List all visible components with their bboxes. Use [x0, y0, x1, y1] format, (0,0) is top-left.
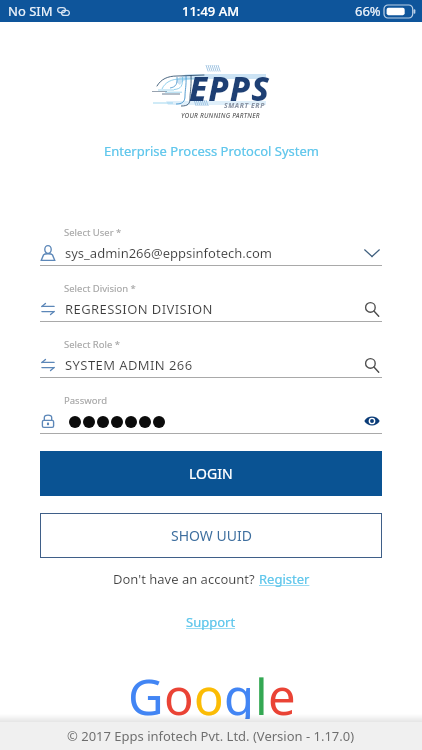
button[interactable]: Select User * — [40, 225, 382, 267]
button[interactable]: Register — [259, 570, 310, 588]
staticText: Select Role * — [64, 338, 121, 351]
staticText: Don't have an account? — [113, 570, 259, 588]
staticText: 11:49 AM — [182, 2, 240, 20]
button[interactable]: Select Role * — [40, 337, 382, 379]
staticText: LOGIN — [189, 464, 233, 483]
staticText: Select Division * — [64, 282, 136, 295]
button[interactable]: Select Division * — [40, 281, 382, 323]
staticText: l — [255, 663, 268, 719]
staticText: 66% — [355, 2, 381, 20]
button[interactable]: Support — [186, 613, 236, 631]
staticText: SHOW UUID — [171, 526, 252, 545]
staticText: e — [268, 663, 296, 719]
staticText: sys_admin266@eppsinfotech.com — [65, 244, 272, 262]
staticText: o — [164, 663, 194, 719]
button[interactable]: SHOW UUID — [40, 513, 382, 558]
staticText: EPPS — [189, 66, 271, 111]
staticText: SMART ERP — [224, 101, 265, 110]
staticText: © 2017 Epps infotech Pvt. Ltd. (Version … — [67, 727, 355, 745]
staticText: o — [194, 663, 224, 719]
staticText: No SIM — [8, 2, 53, 20]
button[interactable]: LOGIN — [40, 451, 382, 496]
staticText: YOUR RUNNING PARTNER — [181, 111, 260, 120]
button[interactable]: Password — [40, 393, 382, 435]
staticText: SYSTEM ADMIN 266 — [65, 356, 193, 374]
staticText: g — [224, 663, 255, 719]
staticText: Password — [64, 394, 107, 407]
staticText: Select User * — [64, 226, 122, 239]
staticText: Enterprise Process Protocol System — [104, 142, 319, 160]
staticText: G — [128, 663, 164, 719]
staticText: REGRESSION DIVISION — [65, 300, 213, 318]
